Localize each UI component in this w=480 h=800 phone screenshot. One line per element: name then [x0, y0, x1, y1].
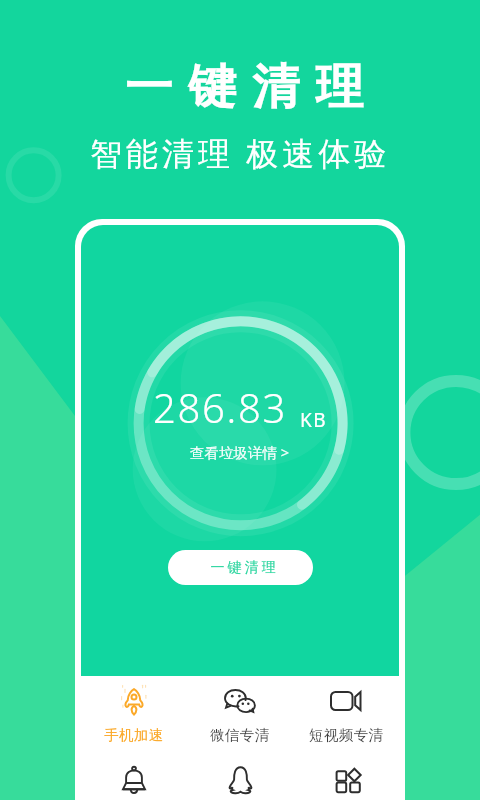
- staticText: 短视频专清: [309, 726, 384, 744]
- button[interactable]: 手机加速: [81, 685, 187, 744]
- button[interactable]: 一键清理: [168, 550, 313, 585]
- button[interactable]: 短视频专清: [293, 685, 399, 744]
- staticText: 286.83: [153, 380, 288, 434]
- button[interactable]: QQ clean: [187, 764, 293, 796]
- button[interactable]: More apps: [293, 764, 399, 796]
- button[interactable]: 微信专清: [187, 685, 293, 744]
- button[interactable]: 查看垃圾详情 >: [190, 442, 290, 462]
- staticText: 微信专清: [210, 726, 270, 744]
- staticText: 一键清理: [117, 57, 371, 117]
- staticText: 查看垃圾详情 >: [190, 442, 290, 462]
- staticText: 手机加速: [104, 726, 164, 744]
- staticText: 一键清理: [209, 559, 277, 577]
- staticText: 智能清理 极速体验: [90, 131, 391, 175]
- staticText: KB: [300, 407, 328, 433]
- button[interactable]: Notifications: [81, 764, 187, 796]
